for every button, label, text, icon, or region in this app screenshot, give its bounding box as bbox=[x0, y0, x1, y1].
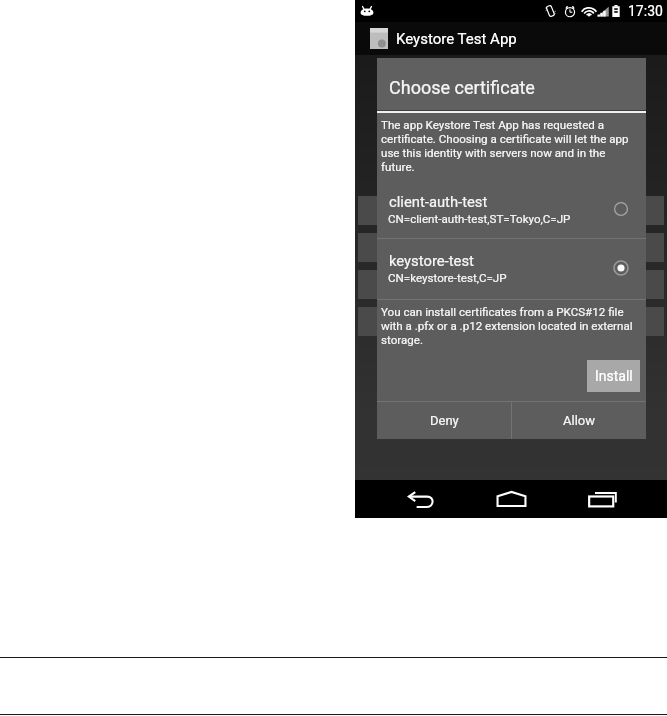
staticText: Deny bbox=[430, 413, 459, 428]
staticText: Allow bbox=[563, 413, 595, 428]
button[interactable]: client-auth-test bbox=[377, 180, 646, 238]
staticText: client-auth-test bbox=[389, 193, 488, 210]
button[interactable]: Home bbox=[485, 480, 537, 518]
staticText: Keystore Test App bbox=[396, 30, 517, 48]
button[interactable]: Allow bbox=[512, 402, 646, 439]
button[interactable]: Recent apps bbox=[576, 480, 628, 518]
staticText: Choose certificate bbox=[389, 77, 535, 98]
button[interactable]: keystore-test bbox=[377, 239, 646, 299]
staticText: CN=client-auth-test,ST=Tokyo,C=JP bbox=[388, 212, 571, 226]
staticText: 17:30 bbox=[628, 3, 663, 19]
button[interactable]: Deny bbox=[377, 402, 511, 439]
button[interactable]: Install bbox=[587, 360, 640, 392]
staticText: The app Keystore Test App has requested … bbox=[381, 118, 637, 174]
staticText: keystore-test bbox=[389, 252, 474, 269]
staticText: Install bbox=[595, 368, 633, 384]
button[interactable]: Back bbox=[394, 480, 446, 518]
staticText: You can install certificates from a PKCS… bbox=[381, 305, 639, 347]
staticText: CN=keystore-test,C=JP bbox=[388, 271, 507, 285]
